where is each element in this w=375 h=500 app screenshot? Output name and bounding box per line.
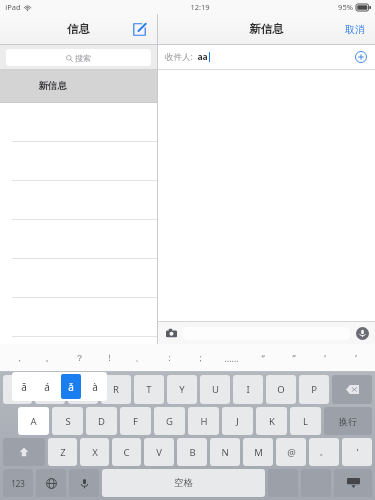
button[interactable]: 。 bbox=[34, 344, 64, 371]
staticText: @ bbox=[287, 446, 296, 459]
button[interactable]: P bbox=[299, 375, 329, 404]
staticText: R bbox=[113, 383, 119, 396]
button[interactable]: N bbox=[210, 438, 240, 466]
staticText: V bbox=[156, 446, 162, 459]
staticText: á bbox=[44, 380, 50, 394]
button[interactable]: R bbox=[101, 375, 131, 404]
button[interactable]: 空格 bbox=[102, 469, 265, 497]
button[interactable]: U bbox=[200, 375, 230, 404]
staticText: ‘ bbox=[324, 352, 326, 364]
button[interactable]: F bbox=[120, 407, 151, 435]
button[interactable]: ā bbox=[14, 374, 33, 399]
button[interactable]: “ bbox=[247, 344, 278, 371]
button[interactable]: 删除 bbox=[332, 375, 372, 404]
button[interactable]: Y bbox=[167, 375, 197, 404]
button[interactable]: ‘ bbox=[309, 344, 340, 371]
button[interactable]: A bbox=[18, 407, 49, 435]
button[interactable]: C bbox=[112, 438, 141, 466]
button[interactable]: 。 bbox=[309, 438, 339, 466]
button[interactable]: K bbox=[256, 407, 287, 435]
staticText: ！ bbox=[105, 352, 114, 363]
staticText: 12:19 bbox=[190, 2, 210, 12]
staticText: 搜索 bbox=[75, 53, 91, 63]
button[interactable]: 添加联系人 bbox=[353, 49, 369, 65]
button[interactable]: 取消 bbox=[341, 20, 369, 39]
button[interactable]: L bbox=[290, 407, 321, 435]
button[interactable]: E bbox=[68, 375, 98, 404]
staticText: U bbox=[212, 383, 219, 396]
button[interactable]: ” bbox=[278, 344, 309, 371]
button[interactable]: Shift bbox=[3, 438, 45, 466]
button[interactable]: H bbox=[188, 407, 219, 435]
staticText: 。 bbox=[319, 446, 329, 458]
button[interactable]: 搜索 bbox=[6, 49, 151, 66]
button[interactable]: 收件人: bbox=[158, 45, 375, 69]
button[interactable]: ’ bbox=[340, 344, 371, 371]
button[interactable]: 切换键盘 bbox=[36, 469, 66, 497]
button[interactable]: á bbox=[37, 374, 57, 399]
button[interactable]: V bbox=[144, 438, 174, 466]
staticText: 、 bbox=[135, 352, 144, 363]
button[interactable]: 新建信息 bbox=[129, 19, 149, 39]
button[interactable]: ' bbox=[342, 438, 372, 466]
button[interactable]: M bbox=[243, 438, 273, 466]
button[interactable]: 123 bbox=[3, 469, 33, 497]
button[interactable]: D bbox=[86, 407, 117, 435]
staticText: Q bbox=[14, 383, 22, 396]
button[interactable]: B bbox=[177, 438, 207, 466]
staticText: ' bbox=[356, 446, 359, 459]
button[interactable]: 语音 bbox=[354, 325, 370, 341]
button[interactable]: 隐藏键盘 bbox=[334, 469, 372, 497]
staticText: 信息 bbox=[67, 22, 90, 36]
staticText: ？ bbox=[75, 352, 84, 363]
staticText: “ bbox=[261, 352, 265, 364]
staticText: F bbox=[133, 415, 138, 428]
button[interactable]: 新信息 bbox=[0, 70, 157, 102]
staticText: iPad bbox=[5, 2, 21, 12]
button[interactable]: 换行 bbox=[324, 407, 372, 435]
button[interactable]: W bbox=[35, 375, 65, 404]
staticText: O bbox=[277, 383, 285, 396]
button[interactable]: 相机 bbox=[163, 325, 179, 341]
button[interactable]: I bbox=[233, 375, 263, 404]
button[interactable]: T bbox=[134, 375, 164, 404]
button[interactable]: …… bbox=[216, 344, 247, 371]
staticText: ’ bbox=[355, 352, 357, 364]
staticText: 取消 bbox=[345, 23, 365, 36]
button[interactable]: S bbox=[52, 407, 83, 435]
button[interactable]: @ bbox=[276, 438, 306, 466]
button[interactable]: J bbox=[222, 407, 253, 435]
button[interactable]: G bbox=[154, 407, 185, 435]
button[interactable]: O bbox=[266, 375, 296, 404]
button[interactable]: ！ bbox=[94, 344, 124, 371]
button[interactable]: ǎ bbox=[61, 374, 81, 399]
button[interactable]: ； bbox=[185, 344, 216, 371]
button[interactable]: à bbox=[85, 374, 105, 399]
button[interactable]: Z bbox=[48, 438, 77, 466]
button[interactable]: ？ bbox=[64, 344, 94, 371]
button[interactable]: 、 bbox=[124, 344, 154, 371]
button[interactable]: ： bbox=[154, 344, 185, 371]
staticText: 新信息 bbox=[249, 22, 284, 36]
staticText: Z bbox=[60, 446, 66, 459]
staticText: M bbox=[254, 446, 263, 459]
button[interactable]: Q bbox=[3, 375, 32, 404]
button[interactable]: ， bbox=[4, 344, 34, 371]
staticText: ” bbox=[292, 352, 296, 364]
button[interactable]: X bbox=[80, 438, 109, 466]
staticText: ， bbox=[15, 352, 24, 363]
staticText: 换行 bbox=[339, 416, 357, 427]
staticText: K bbox=[269, 415, 275, 428]
button[interactable]: 语音输入 bbox=[69, 469, 99, 497]
staticText: W bbox=[46, 383, 55, 396]
